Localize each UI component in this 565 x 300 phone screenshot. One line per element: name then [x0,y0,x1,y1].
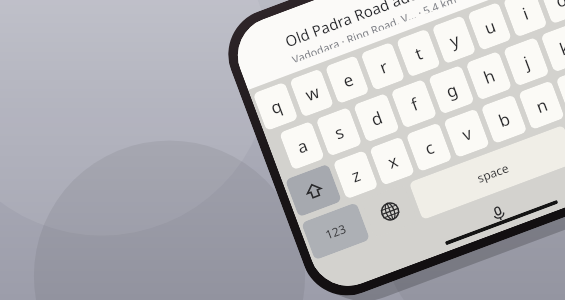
staticText: q [267,94,285,119]
button[interactable]: 123 [301,202,370,260]
button[interactable]: r [360,42,405,91]
button[interactable]: o [538,0,565,24]
staticText: i [519,2,532,25]
button[interactable]: v [443,108,490,158]
staticText: n [532,93,551,118]
button[interactable]: Dictate [481,196,515,230]
button[interactable]: x [369,136,415,186]
staticText: u [481,14,499,39]
staticText: k [556,35,565,60]
staticText: g [442,77,461,103]
button[interactable]: Switch keyboard [361,184,418,238]
staticText: t [411,41,426,65]
staticText: c [421,135,437,160]
staticText: y [446,28,462,52]
button[interactable]: q [253,82,298,131]
staticText: s [331,120,347,145]
button[interactable]: Old Padra Road addresses [230,0,565,90]
staticText: Vadodara · Ring Road, V... · 5.4 km [290,0,458,63]
button[interactable]: w [289,68,334,117]
staticText: r [376,54,391,79]
button[interactable]: s [316,107,362,157]
staticText: h [480,63,498,89]
staticText: d [367,105,386,131]
button[interactable]: d [353,93,400,143]
staticText: o [552,0,565,13]
staticText: space [475,159,511,186]
button[interactable]: a [279,121,325,170]
staticText: f [408,92,421,116]
staticText: z [348,163,363,187]
button[interactable]: c [406,122,452,172]
staticText: a [293,133,311,158]
button[interactable]: n [518,80,565,130]
button[interactable]: b [481,94,527,144]
staticText: v [458,121,475,146]
button[interactable]: g [428,65,475,115]
button[interactable]: u [467,2,512,51]
button[interactable]: y [431,15,476,64]
staticText: 123 [323,220,348,242]
button[interactable]: j [503,37,550,87]
staticText: Old Padra Road addresses [282,0,462,51]
button[interactable]: h [465,51,512,101]
staticText: e [339,67,357,92]
button[interactable]: t [396,28,441,77]
button[interactable]: i [503,0,548,37]
staticText: b [495,107,513,132]
staticText: w [302,80,323,106]
button[interactable]: m [556,66,565,116]
staticText: x [384,149,401,174]
button[interactable]: Shift [285,164,342,217]
button[interactable]: e [325,55,370,104]
button[interactable]: f [390,79,437,129]
button[interactable]: k [540,23,565,73]
button[interactable]: z [333,150,378,199]
button[interactable]: space [409,125,565,220]
staticText: j [520,50,533,74]
